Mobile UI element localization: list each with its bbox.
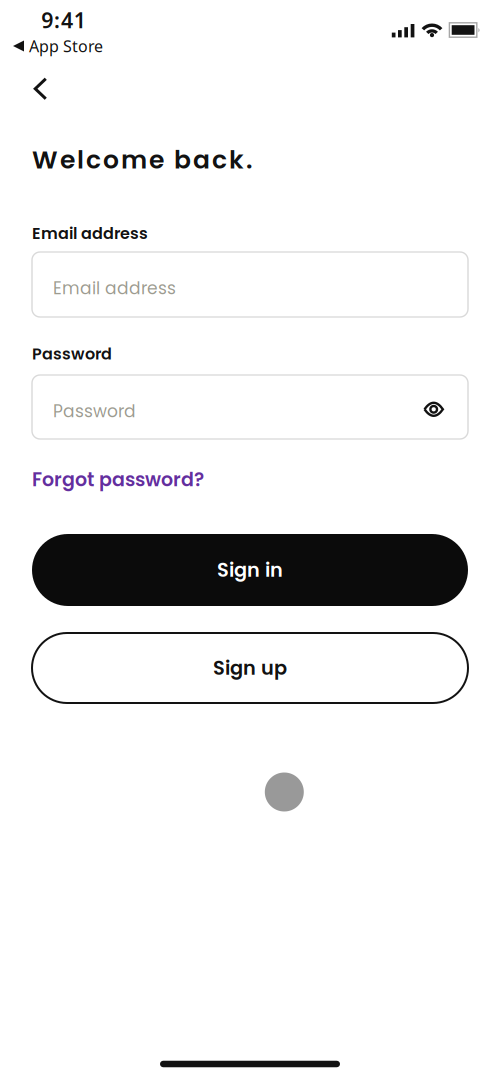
staticText: Sign in [217, 556, 283, 584]
staticText: Forgot password? [32, 466, 204, 493]
staticText: Email address [32, 222, 148, 245]
textField[interactable]: Email address [53, 276, 447, 300]
button[interactable]: Sign in [32, 534, 468, 606]
staticText: App Store [29, 35, 103, 57]
staticText: Sign up [213, 654, 287, 682]
button[interactable]: Sign up [32, 633, 468, 703]
staticText: Password [53, 399, 136, 423]
staticText: Welcome back. [32, 142, 253, 177]
secureTextField[interactable]: Password [53, 399, 447, 423]
staticText: Password [32, 343, 112, 365]
button[interactable]: Back to App Store [13, 35, 103, 57]
button[interactable]: Show password [423, 402, 444, 417]
staticText: 9:41 [41, 6, 86, 34]
button[interactable]: Back [33, 77, 48, 101]
button[interactable]: Forgot password? [32, 466, 204, 493]
staticText: Email address [53, 276, 176, 300]
